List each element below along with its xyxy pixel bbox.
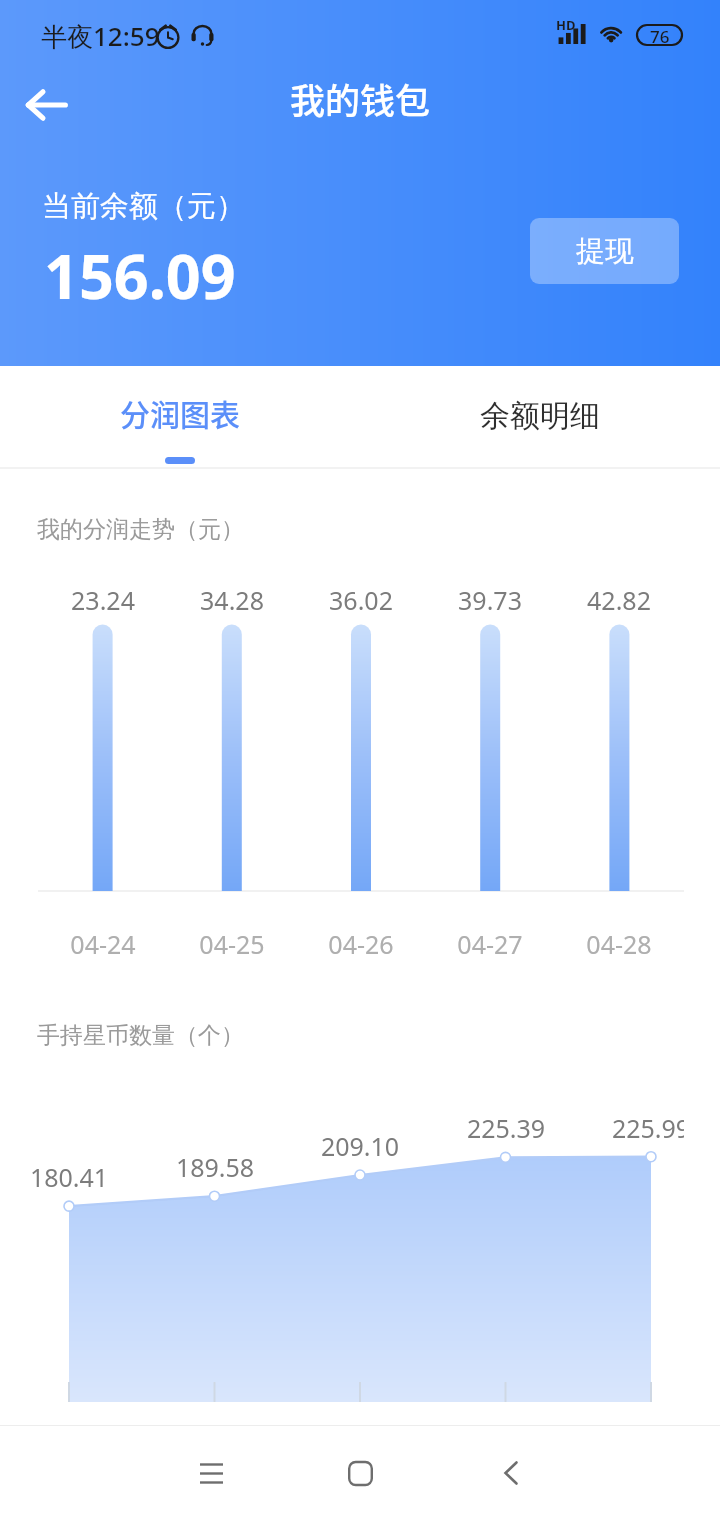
staticText: 04-24 [43,927,163,961]
staticText: 225.39 [446,1111,566,1145]
staticText: 39.73 [430,583,550,617]
staticText: 76 [650,25,670,45]
staticText: 04-26 [301,927,421,961]
button[interactable]: Recent apps [171,1433,251,1513]
staticText: 04-28 [559,927,679,961]
staticText: 分润图表 [120,391,240,434]
staticText: 23.24 [43,583,163,617]
staticText: 04-27 [430,927,550,961]
staticText: 34.28 [172,583,292,617]
staticText: 提现 [576,233,634,270]
staticText: 42.82 [559,583,679,617]
button[interactable]: 提现 [530,218,679,284]
staticText: 余额明细 [480,397,600,435]
staticText: 189.58 [155,1150,275,1184]
staticText: 156.09 [44,234,236,317]
button[interactable]: Back [471,1433,551,1513]
button[interactable]: 余额明细 [360,366,720,467]
staticText: 当前余额（元） [42,188,245,225]
staticText: 180.41 [9,1160,129,1194]
staticText: 209.10 [300,1129,420,1163]
staticText: 手持星币数量（个） [37,1021,244,1050]
staticText: HD [556,16,576,34]
staticText: 半夜12:59 [41,18,160,54]
button[interactable]: 分润图表 [0,366,360,467]
staticText: 我的钱包 [290,73,431,124]
staticText: 04-25 [172,927,292,961]
staticText: 我的分润走势（元） [37,515,244,544]
button[interactable]: Back [10,69,82,141]
staticText: 225.99 [591,1111,684,1145]
button[interactable]: Home [320,1433,400,1513]
staticText: 36.02 [301,583,421,617]
